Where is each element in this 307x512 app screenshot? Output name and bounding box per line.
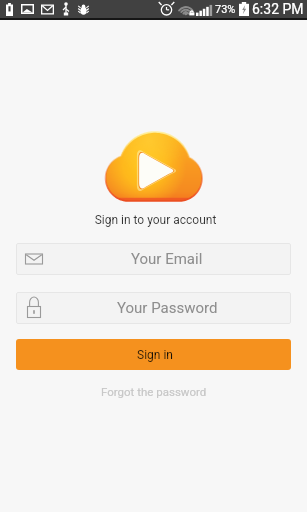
staticText: Your Password [117,299,218,317]
button[interactable]: Sign in [16,339,291,370]
button[interactable]: Forgot the password [95,382,213,401]
staticText: Your Email [131,250,203,268]
staticText: Sign in [137,348,173,362]
staticText: Sign in to your account [2,213,307,227]
button[interactable]: Your Password [16,292,291,324]
staticText: 73% [215,3,236,16]
staticText: 6:32 PM [252,1,304,17]
button[interactable]: Your Email [16,243,291,275]
